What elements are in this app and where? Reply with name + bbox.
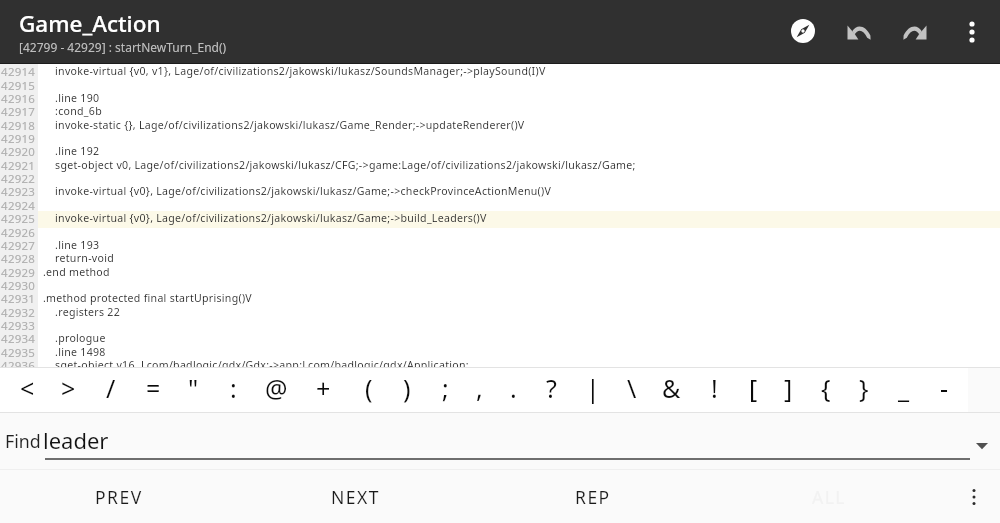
staticText: ?: [546, 371, 557, 405]
staticText: 42933: [0, 318, 35, 334]
staticText: 42916: [0, 91, 35, 107]
button[interactable]: More options: [948, 470, 1000, 523]
staticText: return-void: [43, 251, 114, 265]
staticText: sget-object v16, Lcom/badlogic/gdx/Gdx;-…: [43, 358, 469, 372]
staticText: 42927: [0, 238, 35, 254]
button[interactable]: \: [612, 368, 651, 412]
staticText: invoke-static {}, Lage/of/civilizations2…: [43, 118, 525, 132]
staticText: 42920: [0, 144, 35, 160]
button[interactable]: Navigate: [781, 9, 825, 53]
staticText: .registers 22: [43, 305, 121, 319]
staticText: 42917: [0, 104, 35, 120]
staticText: .line 1498: [43, 345, 106, 359]
staticText: &: [662, 371, 681, 405]
staticText: 42919: [0, 131, 35, 147]
staticText: 42923: [0, 184, 35, 200]
staticText: ;: [442, 371, 449, 405]
button[interactable]: ?: [532, 368, 572, 412]
button[interactable]: >: [48, 368, 89, 412]
staticText: =: [146, 371, 161, 405]
button[interactable]: Redo: [893, 10, 937, 54]
button[interactable]: =: [132, 368, 173, 412]
button[interactable]: !: [693, 368, 734, 412]
staticText: 42914: [0, 64, 35, 80]
staticText: <: [20, 371, 35, 405]
staticText: \: [627, 371, 637, 405]
staticText: @: [265, 371, 288, 405]
button[interactable]: |: [572, 368, 612, 412]
staticText: .end method: [43, 265, 110, 279]
button[interactable]: _: [884, 368, 924, 412]
staticText: invoke-virtual {v0}, Lage/of/civilizatio…: [43, 184, 552, 198]
staticText: }: [859, 371, 869, 405]
button[interactable]: }: [845, 368, 884, 412]
button[interactable]: Show search options: [966, 433, 998, 465]
staticText: REP: [575, 485, 611, 509]
staticText: .line 190: [43, 91, 100, 105]
staticText: {: [821, 371, 831, 405]
staticText: sget-object v0, Lage/of/civilizations2/j…: [43, 158, 636, 172]
staticText: [42799 - 42929] : startNewTurn_End(): [19, 39, 227, 55]
staticText: 42935: [0, 345, 35, 361]
staticText: 42918: [0, 118, 35, 134]
staticText: Game_Action: [19, 8, 161, 39]
button[interactable]: Undo: [837, 10, 881, 54]
staticText: 42928: [0, 251, 35, 267]
button[interactable]: /: [90, 368, 132, 412]
staticText: ]: [784, 371, 793, 405]
button[interactable]: ): [387, 368, 426, 412]
staticText: 42931: [0, 291, 35, 307]
staticText: :: [230, 371, 237, 405]
staticText: !: [711, 371, 718, 405]
staticText: .prologue: [43, 331, 106, 345]
staticText: ,: [476, 371, 483, 405]
staticText: +: [316, 371, 331, 405]
button[interactable]: <: [0, 368, 48, 412]
button[interactable]: +: [300, 368, 346, 412]
button[interactable]: [: [734, 368, 771, 412]
button[interactable]: .: [496, 368, 532, 412]
staticText: 42921: [0, 158, 35, 174]
staticText: >: [61, 371, 76, 405]
staticText: ": [188, 371, 199, 405]
staticText: /: [106, 371, 116, 405]
staticText: ): [403, 371, 411, 405]
staticText: PREV: [95, 485, 143, 509]
staticText: .line 193: [43, 238, 100, 252]
staticText: _: [898, 371, 910, 405]
button[interactable]: -: [924, 368, 968, 412]
staticText: 42924: [0, 198, 35, 214]
button[interactable]: ,: [462, 368, 496, 412]
staticText: invoke-virtual {v0, v1}, Lage/of/civiliz…: [43, 64, 546, 78]
staticText: 42925: [0, 211, 35, 227]
button[interactable]: ;: [426, 368, 462, 412]
button[interactable]: ": [173, 368, 213, 412]
staticText: invoke-virtual {v0}, Lage/of/civilizatio…: [43, 211, 487, 225]
button[interactable]: REP: [474, 470, 711, 523]
staticText: 42936: [0, 358, 35, 374]
button[interactable]: :: [213, 368, 255, 412]
button[interactable]: More options: [952, 12, 992, 52]
staticText: .: [510, 371, 517, 405]
staticText: leader: [43, 425, 109, 455]
staticText: 42926: [0, 225, 35, 241]
button[interactable]: (: [346, 368, 388, 412]
button[interactable]: {: [807, 368, 845, 412]
button[interactable]: ]: [771, 368, 808, 412]
staticText: 42922: [0, 171, 35, 187]
staticText: .method protected final startUprising()V: [43, 291, 252, 305]
button[interactable]: @: [254, 368, 300, 412]
staticText: 42932: [0, 305, 35, 321]
button[interactable]: PREV: [0, 470, 237, 523]
staticText: NEXT: [331, 485, 381, 509]
staticText: -: [940, 371, 949, 405]
button[interactable]: NEXT: [237, 470, 474, 523]
staticText: (: [365, 371, 373, 405]
button[interactable]: &: [651, 368, 693, 412]
staticText: 42929: [0, 265, 35, 281]
staticText: 42934: [0, 331, 35, 347]
staticText: [: [749, 371, 758, 405]
staticText: :cond_6b: [43, 104, 102, 118]
